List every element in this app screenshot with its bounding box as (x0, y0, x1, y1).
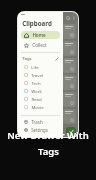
staticText: Settings (31, 127, 48, 133)
button[interactable]: Movie (18, 103, 63, 111)
button[interactable]: Confirm (66, 127, 76, 135)
staticText: Read (31, 96, 42, 102)
button[interactable]: Collect (21, 41, 60, 49)
staticText: Home (32, 32, 46, 38)
staticText: New Drawer With (7, 129, 89, 142)
button[interactable]: Home (21, 31, 60, 39)
button[interactable]: Settings (18, 126, 63, 134)
staticText: Travel (31, 72, 43, 78)
staticText: Tags (38, 145, 59, 158)
staticText: Movie (31, 104, 44, 110)
staticText: Life (31, 64, 39, 70)
button[interactable]: Life (18, 63, 63, 71)
staticText: Collect (32, 42, 47, 48)
button[interactable]: Edit tags (55, 57, 59, 61)
button[interactable]: Travel (18, 71, 63, 79)
staticText: Tags (22, 56, 32, 62)
button[interactable]: Work (18, 87, 63, 95)
button[interactable]: Tech (18, 79, 63, 87)
staticText: Tech (31, 80, 41, 86)
staticText: Trash (31, 119, 43, 125)
staticText: Work (31, 88, 42, 94)
button[interactable]: Read (18, 95, 63, 103)
staticText: Clipboard (22, 19, 52, 27)
button[interactable]: Trash (18, 118, 63, 126)
